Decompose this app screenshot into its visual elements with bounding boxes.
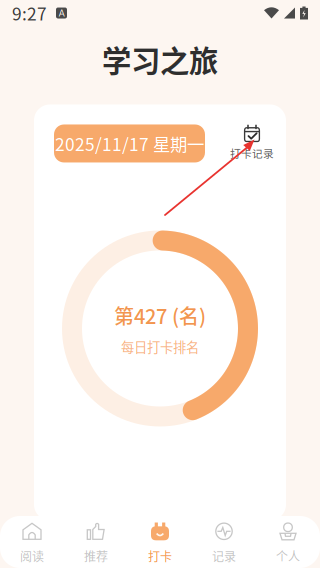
staticText: 记录 [212,547,236,565]
staticText: 打卡 [148,547,172,565]
button[interactable]: 推荐 [64,512,128,568]
staticText: 阅读 [20,547,44,565]
button[interactable]: 阅读 [0,512,64,568]
button[interactable]: 打卡记录 [230,124,274,161]
staticText: 第427 (名) [114,301,206,330]
button[interactable]: 个人 [256,512,320,568]
staticText: 推荐 [84,547,108,565]
staticText: 个人 [276,547,300,565]
staticText: A [58,7,64,19]
button[interactable]: 2025/11/17 星期一 [54,124,205,162]
button[interactable]: 记录 [192,512,256,568]
staticText: 每日打卡排名 [121,337,199,356]
staticText: 学习之旅 [102,38,218,80]
staticText: 9:27 [12,0,47,26]
button[interactable]: 打卡 [128,512,192,568]
staticText: 2025/11/17 星期一 [55,131,204,156]
staticText: 打卡记录 [230,145,274,161]
